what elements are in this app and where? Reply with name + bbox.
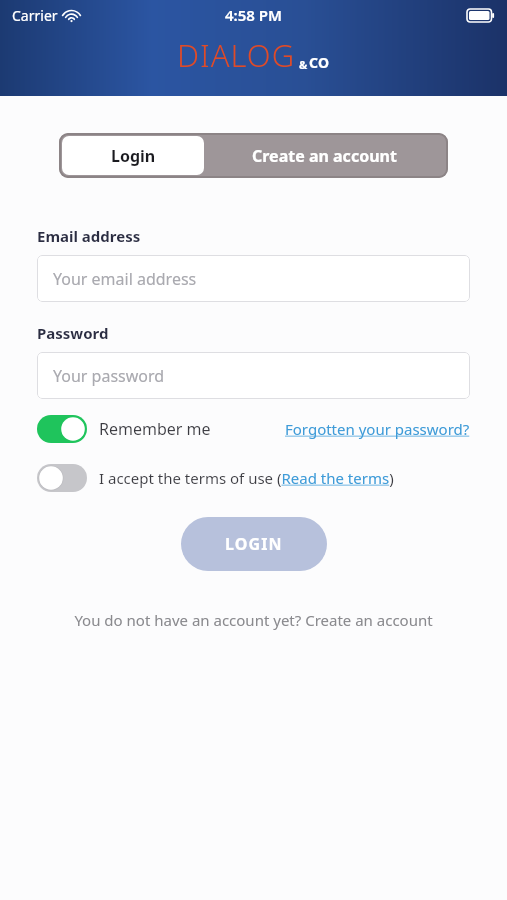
staticText: CO	[309, 53, 330, 72]
button[interactable]: Login	[62, 136, 204, 175]
staticText: Login	[111, 145, 156, 167]
staticText: Remember me	[99, 418, 211, 440]
button[interactable]: Accept terms toggle	[37, 464, 87, 492]
staticText: Password	[37, 323, 109, 343]
staticText: You do not have an account yet? Create a…	[0, 610, 507, 630]
staticText: Create an account	[252, 145, 397, 167]
staticText: LOGIN	[225, 533, 283, 555]
staticText: Forgotten your password?	[285, 419, 470, 439]
staticText: Your email address	[53, 268, 197, 290]
staticText: 4:58 PM	[225, 5, 282, 25]
staticText: &	[299, 57, 308, 72]
staticText: Your password	[53, 365, 165, 387]
button[interactable]: I accept the terms of use (Read the term…	[99, 468, 394, 488]
button[interactable]: Your email address	[37, 255, 470, 302]
button[interactable]: Remember me toggle	[37, 415, 211, 443]
staticText: DIALOG	[177, 34, 296, 76]
staticText: Carrier	[12, 6, 58, 25]
button[interactable]: Your password	[37, 352, 470, 399]
button[interactable]: You do not have an account yet? Create a…	[0, 605, 507, 635]
staticText: Email address	[37, 226, 141, 246]
staticText: I accept the terms of use (Read the term…	[99, 468, 394, 488]
button[interactable]: LOGIN	[181, 517, 327, 571]
button[interactable]: Create an account	[204, 136, 445, 175]
button[interactable]: Forgotten your password?	[285, 419, 470, 439]
